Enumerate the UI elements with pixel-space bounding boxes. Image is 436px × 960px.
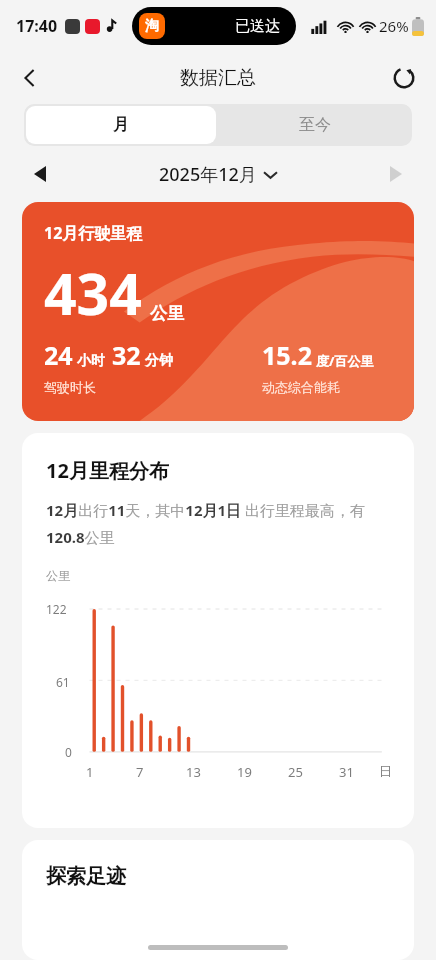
- staticText: 日: [379, 763, 392, 779]
- staticText: 122: [46, 601, 67, 617]
- staticText: 17:40: [16, 15, 58, 37]
- staticText: 公里: [150, 303, 184, 324]
- staticText: 数据汇总: [180, 66, 256, 90]
- staticText: 0: [65, 744, 72, 760]
- staticText: 淘: [145, 17, 159, 35]
- staticText: 月: [113, 115, 129, 135]
- staticText: 分钟: [145, 352, 173, 370]
- staticText: 度/百公里: [316, 352, 374, 370]
- button[interactable]: Next month: [378, 156, 414, 192]
- staticText: 25: [288, 763, 303, 781]
- button[interactable]: 12月里程分布: [22, 433, 414, 828]
- staticText: 12月里程分布: [46, 457, 169, 484]
- staticText: 24: [44, 338, 73, 372]
- staticText: 2025年12月: [159, 162, 257, 187]
- staticText: 已送达: [235, 17, 280, 36]
- staticText: 434: [44, 254, 142, 332]
- button[interactable]: Refresh: [382, 56, 426, 100]
- staticText: 7: [136, 763, 144, 781]
- staticText: 小时: [77, 352, 105, 370]
- button[interactable]: 月: [26, 106, 216, 144]
- staticText: 19: [237, 763, 252, 781]
- button[interactable]: 至今: [218, 104, 412, 146]
- staticText: 驾驶时长: [44, 379, 96, 395]
- staticText: 32: [112, 338, 141, 372]
- staticText: 12月行驶里程: [44, 222, 143, 244]
- staticText: 公里: [46, 568, 70, 583]
- staticText: 1: [86, 763, 94, 781]
- staticText: 探索足迹: [46, 864, 126, 889]
- button[interactable]: 2025年12月: [159, 162, 277, 187]
- button[interactable]: Back: [8, 56, 52, 100]
- staticText: 31: [339, 763, 354, 781]
- button[interactable]: Previous month: [22, 156, 58, 192]
- staticText: 至今: [299, 115, 331, 135]
- button[interactable]: 12月行驶里程: [22, 202, 414, 421]
- staticText: 15.2: [262, 338, 312, 372]
- button[interactable]: 探索足迹: [22, 840, 414, 960]
- staticText: 61: [56, 674, 70, 690]
- staticText: 动态综合能耗: [262, 379, 340, 395]
- staticText: 26%: [379, 16, 409, 36]
- staticText: 13: [186, 763, 201, 781]
- staticText: 12月出行11天，其中12月1日 出行里程最高，有120.8公里: [46, 500, 394, 548]
